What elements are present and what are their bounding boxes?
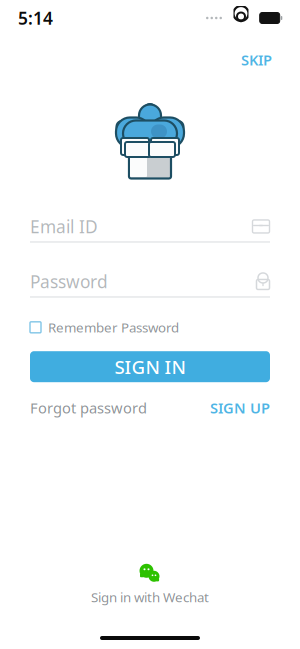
button[interactable]: SIGN UP — [210, 392, 270, 424]
staticText: Remember Password — [48, 318, 179, 336]
button[interactable]: SIGN IN — [30, 351, 270, 382]
staticText: SIGN IN — [114, 354, 185, 379]
button[interactable]: Forgot password — [30, 392, 147, 424]
button[interactable]: Sign in with Wechat — [73, 558, 227, 610]
button[interactable]: SKIP — [231, 44, 282, 75]
staticText: Forgot password — [30, 398, 147, 418]
button[interactable]: Remember Password — [0, 313, 300, 341]
staticText: SIGN UP — [210, 398, 270, 418]
staticText: Password — [30, 270, 108, 293]
staticText: 5:14 — [18, 6, 53, 29]
staticText: SKIP — [241, 50, 272, 69]
staticText: Sign in with Wechat — [91, 588, 209, 606]
staticText: Email ID — [30, 215, 98, 238]
